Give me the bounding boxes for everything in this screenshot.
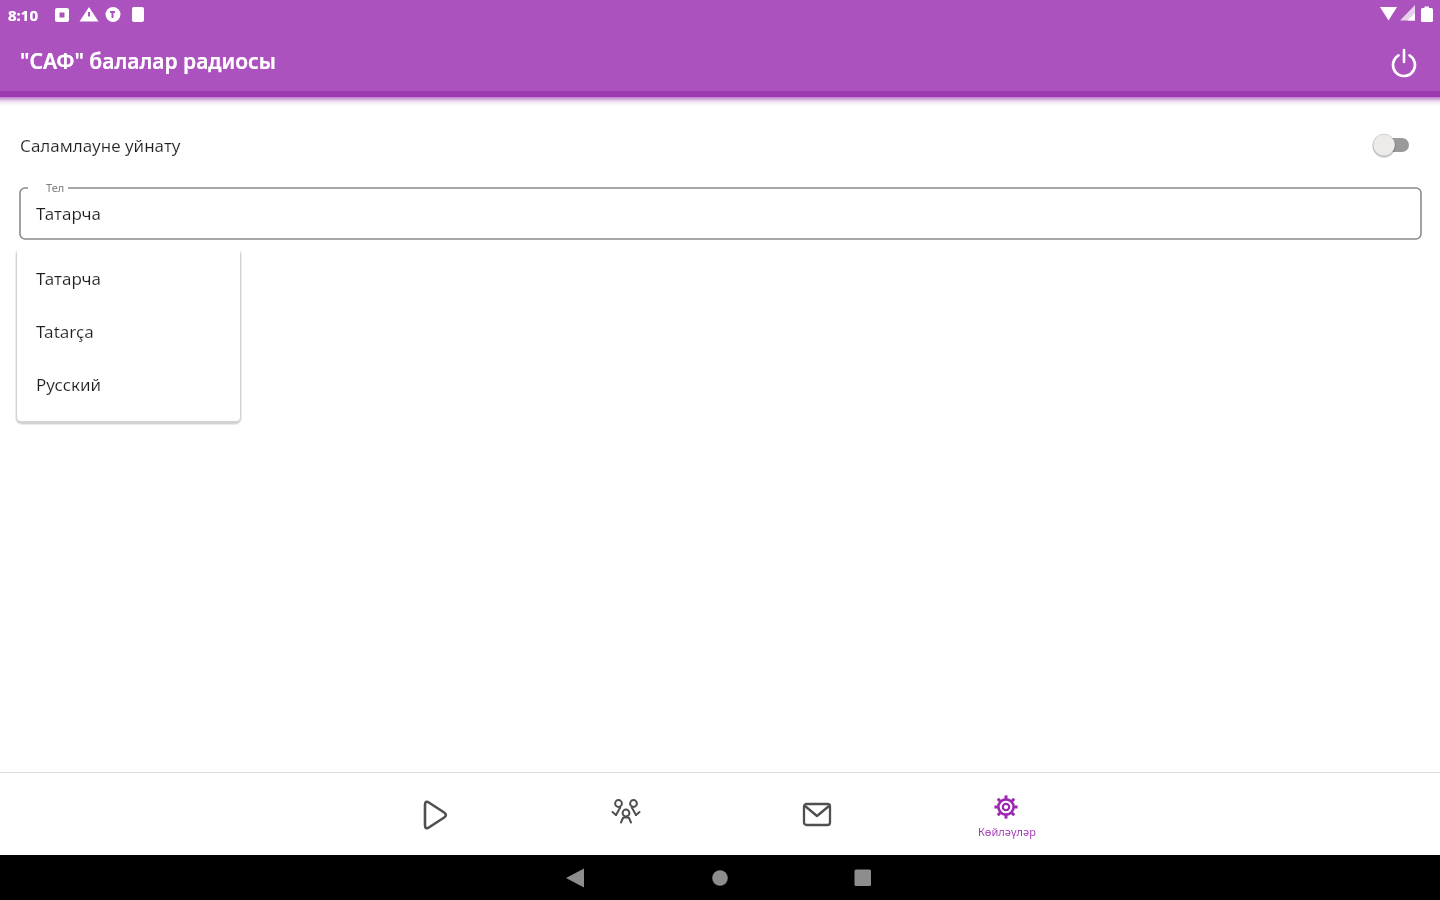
button[interactable] bbox=[828, 855, 898, 900]
staticText: Көйләүләр bbox=[978, 824, 1036, 839]
button[interactable]: Русский bbox=[17, 358, 240, 411]
staticText: Татарча bbox=[36, 267, 102, 290]
button[interactable]: Tatarça bbox=[17, 305, 240, 358]
staticText: Русский bbox=[36, 373, 102, 396]
staticText: "САФ" балалар радиосы bbox=[20, 47, 276, 76]
staticText: Саламлауне уйнату bbox=[20, 134, 181, 157]
button[interactable] bbox=[19, 187, 1422, 240]
button[interactable] bbox=[1380, 40, 1428, 88]
button[interactable] bbox=[721, 773, 912, 855]
staticText: Tatarça bbox=[36, 320, 94, 343]
staticText: Татарча bbox=[36, 202, 102, 225]
button[interactable]: Көйләүләр bbox=[911, 773, 1102, 855]
button[interactable]: Татарча bbox=[17, 252, 240, 305]
button[interactable] bbox=[340, 773, 531, 855]
button[interactable]: Саламлауне уйнату bbox=[0, 120, 1440, 170]
button[interactable] bbox=[540, 855, 610, 900]
staticText: Тел bbox=[46, 180, 65, 195]
button[interactable] bbox=[530, 773, 721, 855]
staticText: 8:10 bbox=[8, 5, 38, 25]
button[interactable] bbox=[685, 855, 755, 900]
